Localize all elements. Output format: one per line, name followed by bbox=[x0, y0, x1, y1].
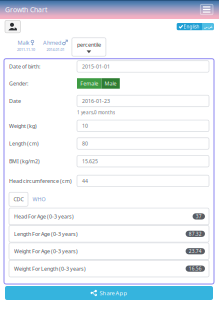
staticText: Malk bbox=[18, 39, 30, 46]
staticText: percentile bbox=[77, 41, 101, 48]
staticText: Female bbox=[80, 80, 98, 87]
staticText: Length (cm) bbox=[9, 140, 39, 147]
button[interactable]: WHO bbox=[28, 192, 50, 206]
staticText: Head circumference (cm) bbox=[9, 177, 72, 185]
button[interactable]: percentile bbox=[72, 38, 106, 56]
staticText: English bbox=[184, 23, 200, 30]
button[interactable]: Share App bbox=[5, 286, 213, 300]
staticText: BMI (kg/m2) bbox=[9, 158, 40, 165]
staticText: Length For Age (0-3 years) bbox=[14, 230, 78, 237]
staticText: Gender: bbox=[9, 80, 28, 87]
button[interactable]: Malk bbox=[13, 37, 39, 56]
staticText: 23.74 bbox=[189, 248, 202, 254]
staticText: 1 years,0 months bbox=[77, 109, 115, 116]
button[interactable]: Weight For Age (0-3 years) bbox=[9, 243, 209, 260]
staticText: 15.625 bbox=[82, 158, 98, 165]
staticText: 44 bbox=[82, 177, 88, 184]
staticText: 37 bbox=[196, 213, 202, 220]
button[interactable]: Ahmed bbox=[39, 37, 72, 56]
staticText: 2011-11-10 bbox=[17, 47, 35, 52]
staticText: Weight For Age (0-3 years) bbox=[14, 248, 78, 255]
staticText: Date bbox=[9, 97, 21, 105]
staticText: CDC bbox=[13, 196, 23, 203]
staticText: 16.56 bbox=[189, 265, 202, 272]
button[interactable]: English bbox=[177, 23, 202, 30]
staticText: Male bbox=[105, 80, 117, 87]
button[interactable]: عربي bbox=[202, 23, 214, 30]
staticText: Head For Age (0-3 years) bbox=[14, 213, 74, 220]
button[interactable]: Profile bbox=[5, 20, 20, 33]
staticText: Weight (kg) bbox=[9, 122, 37, 129]
button[interactable]: Male bbox=[101, 78, 120, 89]
staticText: 80 bbox=[82, 140, 88, 147]
button[interactable]: Female bbox=[77, 78, 101, 89]
staticText: 10 bbox=[82, 122, 88, 129]
staticText: 87.32 bbox=[189, 231, 202, 237]
staticText: Ahmed bbox=[43, 39, 61, 46]
staticText: 2015-01-01 bbox=[82, 63, 110, 70]
staticText: Weight For Length (0-3 years) bbox=[14, 265, 86, 272]
staticText: 2016-01-23 bbox=[82, 97, 110, 104]
button[interactable]: Menu bbox=[200, 4, 213, 15]
staticText: عربي bbox=[203, 24, 213, 29]
staticText: Share App bbox=[99, 289, 127, 297]
button[interactable]: Weight For Length (0-3 years) bbox=[9, 260, 209, 277]
staticText: Growth Chart bbox=[5, 5, 47, 14]
staticText: WHO bbox=[32, 196, 45, 203]
button[interactable]: Head For Age (0-3 years) bbox=[9, 208, 209, 225]
button[interactable]: CDC bbox=[9, 192, 28, 206]
button[interactable]: Length For Age (0-3 years) bbox=[9, 225, 209, 242]
staticText: Date of birth: bbox=[9, 63, 40, 70]
staticText: 2014-01-01 bbox=[46, 47, 64, 52]
